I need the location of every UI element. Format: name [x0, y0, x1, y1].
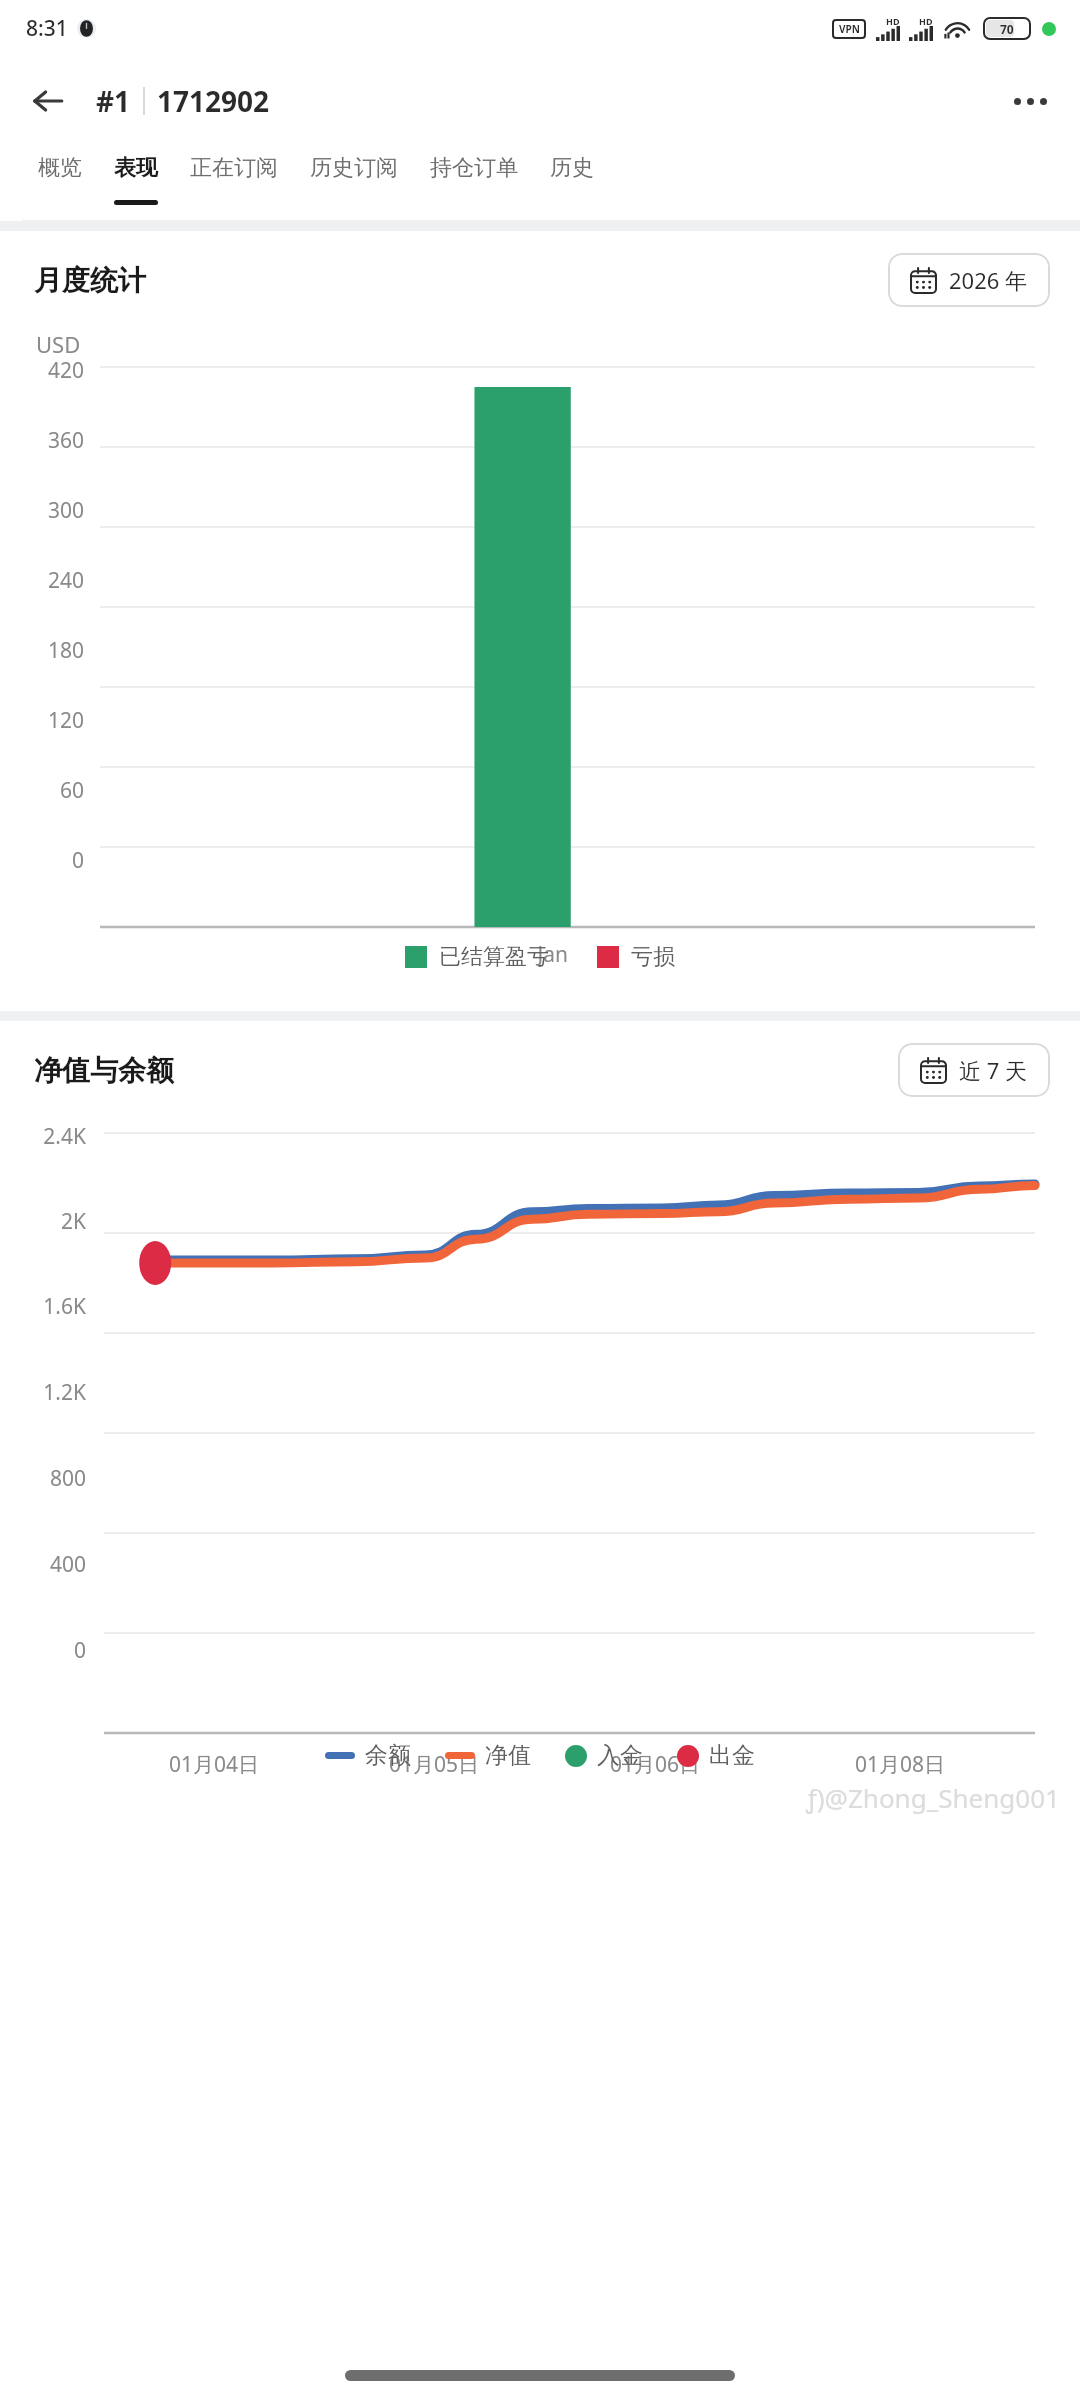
staticText: 1712902 — [157, 82, 270, 120]
button[interactable]: 近 7 天 — [898, 1043, 1050, 1097]
button[interactable]: 正在订阅 — [174, 146, 294, 200]
staticText: 60 — [59, 776, 84, 805]
staticText: 亏损 — [631, 943, 675, 971]
staticText: 0 — [73, 1636, 86, 1665]
button[interactable]: 表现 — [98, 146, 174, 205]
staticText: 120 — [47, 706, 84, 735]
button[interactable]: 历史订阅 — [294, 146, 414, 200]
staticText: 概览 — [38, 154, 82, 182]
staticText: HD — [919, 15, 933, 27]
staticText: 月度统计 — [34, 263, 146, 298]
staticText: 180 — [47, 636, 84, 665]
button[interactable]: More options — [1002, 73, 1058, 129]
staticText: #1 — [96, 82, 131, 120]
button[interactable]: 2026 年 — [888, 253, 1050, 307]
staticText: 余额 — [365, 1741, 411, 1770]
staticText: 净值 — [485, 1741, 531, 1770]
staticText: 01月06日 — [610, 1750, 701, 1779]
staticText: 2K — [60, 1207, 86, 1236]
staticText: 240 — [47, 566, 84, 595]
staticText: 2.4K — [43, 1122, 86, 1151]
staticText: 400 — [49, 1550, 86, 1579]
staticText: 300 — [47, 496, 84, 525]
button[interactable]: 概览 — [22, 146, 98, 200]
staticText: 0 — [71, 846, 84, 875]
staticText: 800 — [49, 1464, 86, 1493]
staticText: 1.2K — [43, 1378, 86, 1407]
button[interactable]: Back — [20, 73, 76, 129]
staticText: 已结算盈亏 — [439, 943, 549, 971]
staticText: 70 — [1000, 21, 1014, 37]
staticText: 历史订阅 — [310, 154, 398, 182]
button[interactable]: 持仓订单 — [414, 146, 534, 200]
staticText: 入金 — [597, 1741, 643, 1770]
button[interactable]: 历史 — [534, 146, 610, 200]
staticText: 8:31 — [26, 14, 68, 43]
staticText: 2026 年 — [949, 265, 1028, 295]
staticText: 420 — [47, 356, 84, 385]
staticText: 01月04日 — [169, 1750, 260, 1779]
staticText: VPN — [839, 22, 860, 36]
staticText: 360 — [47, 426, 84, 455]
staticText: 01月08日 — [855, 1750, 946, 1779]
staticText: ƒ)@Zhong_Sheng001 — [806, 1780, 1060, 1815]
staticText: 01月05日 — [389, 1750, 480, 1779]
staticText: 出金 — [709, 1741, 755, 1770]
staticText: USD — [36, 329, 81, 359]
staticText: HD — [886, 15, 900, 27]
staticText: 1.6K — [43, 1292, 86, 1321]
staticText: 近 7 天 — [959, 1055, 1028, 1085]
staticText: Jan — [100, 940, 568, 969]
staticText: 正在订阅 — [190, 154, 278, 182]
staticText: 净值与余额 — [34, 1053, 174, 1088]
staticText: 持仓订单 — [430, 154, 518, 182]
staticText: 表现 — [114, 154, 158, 182]
staticText: 历史 — [550, 154, 594, 182]
